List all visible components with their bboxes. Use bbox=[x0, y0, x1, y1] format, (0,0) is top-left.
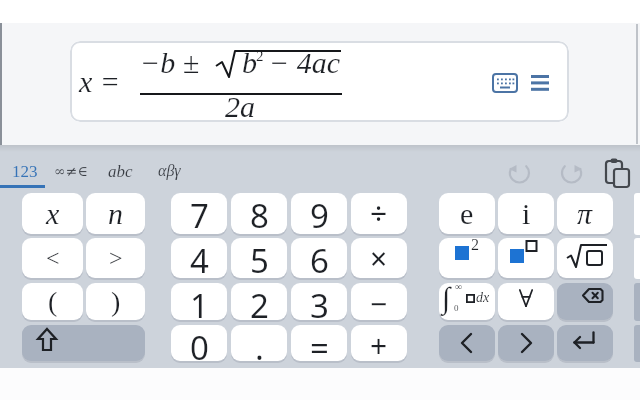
button[interactable]: 3 bbox=[291, 283, 347, 320]
staticText: < bbox=[46, 245, 60, 272]
staticText: 2 bbox=[256, 48, 264, 65]
staticText: 6 bbox=[310, 238, 329, 278]
staticText: −b ± bbox=[140, 46, 200, 79]
button[interactable]: ( bbox=[22, 283, 83, 320]
staticText: 1 bbox=[190, 283, 209, 320]
staticText: . bbox=[255, 325, 264, 361]
button[interactable]: 8 bbox=[231, 193, 287, 234]
staticText: × bbox=[370, 238, 388, 278]
button[interactable] bbox=[439, 325, 495, 361]
button[interactable]: 2 bbox=[231, 283, 287, 320]
button[interactable] bbox=[439, 238, 495, 278]
staticText: n bbox=[108, 197, 123, 230]
staticText: ∫ bbox=[442, 281, 451, 314]
button[interactable]: 7 bbox=[171, 193, 227, 234]
button[interactable]: . bbox=[231, 325, 287, 361]
button[interactable]: i bbox=[498, 193, 554, 234]
staticText: 0 bbox=[454, 303, 459, 313]
staticText: 2a bbox=[225, 90, 255, 123]
button[interactable]: ∞≠∈ bbox=[50, 159, 92, 183]
staticText: ) bbox=[111, 286, 121, 317]
button[interactable] bbox=[22, 325, 145, 361]
staticText: > bbox=[109, 245, 123, 272]
staticText: ∞ bbox=[455, 281, 463, 292]
staticText: 3 bbox=[310, 283, 329, 320]
staticText: x bbox=[46, 197, 60, 230]
button[interactable]: 123 bbox=[4, 159, 46, 183]
button[interactable] bbox=[498, 325, 554, 361]
button[interactable]: + bbox=[351, 325, 407, 361]
button[interactable] bbox=[531, 75, 549, 93]
staticText: b bbox=[242, 46, 257, 79]
button[interactable] bbox=[439, 283, 495, 320]
button[interactable]: x bbox=[22, 193, 83, 234]
staticText: 5 bbox=[250, 238, 269, 278]
staticText: 2 bbox=[471, 236, 479, 254]
staticText: i bbox=[522, 197, 531, 230]
staticText: 8 bbox=[250, 193, 269, 234]
button[interactable]: − bbox=[351, 283, 407, 320]
staticText: 123 bbox=[12, 162, 38, 181]
staticText: x = bbox=[79, 65, 121, 98]
button[interactable]: n bbox=[86, 193, 145, 234]
button[interactable] bbox=[498, 238, 554, 278]
button[interactable] bbox=[557, 325, 613, 361]
staticText: 9 bbox=[310, 193, 329, 234]
staticText: ÷ bbox=[370, 193, 388, 234]
button[interactable]: 1 bbox=[171, 283, 227, 320]
button[interactable]: × bbox=[351, 238, 407, 278]
staticText: 2 bbox=[250, 283, 269, 320]
button[interactable] bbox=[493, 72, 518, 95]
button[interactable]: 9 bbox=[291, 193, 347, 234]
staticText: ( bbox=[48, 286, 58, 317]
staticText: 0 bbox=[190, 325, 209, 361]
staticText: dx bbox=[476, 290, 490, 306]
button[interactable] bbox=[557, 238, 613, 278]
button[interactable]: ) bbox=[86, 283, 145, 320]
button[interactable]: 0 bbox=[171, 325, 227, 361]
button[interactable] bbox=[605, 158, 635, 189]
staticText: − bbox=[370, 283, 388, 320]
staticText: αβγ bbox=[158, 162, 181, 180]
staticText: − 4ac bbox=[269, 46, 341, 79]
button[interactable]: < bbox=[22, 238, 83, 278]
staticText: ∞≠∈ bbox=[54, 163, 88, 179]
button[interactable] bbox=[498, 283, 554, 320]
button[interactable]: > bbox=[86, 238, 145, 278]
staticText: π bbox=[577, 197, 593, 230]
staticText: 4 bbox=[190, 238, 209, 278]
button[interactable]: αβγ bbox=[148, 159, 190, 183]
button[interactable]: 5 bbox=[231, 238, 287, 278]
button[interactable]: e bbox=[439, 193, 495, 234]
staticText: + bbox=[370, 325, 388, 361]
button[interactable]: = bbox=[291, 325, 347, 361]
button[interactable] bbox=[559, 160, 584, 185]
staticText: = bbox=[310, 325, 329, 361]
staticText: abc bbox=[108, 162, 133, 181]
button[interactable]: π bbox=[557, 193, 613, 234]
button[interactable]: 4 bbox=[171, 238, 227, 278]
button[interactable]: 6 bbox=[291, 238, 347, 278]
staticText: 7 bbox=[190, 193, 209, 234]
staticText: e bbox=[460, 197, 474, 230]
button[interactable]: abc bbox=[101, 159, 139, 183]
button[interactable]: ÷ bbox=[351, 193, 407, 234]
button[interactable] bbox=[70, 41, 569, 122]
button[interactable] bbox=[507, 160, 532, 185]
button[interactable] bbox=[557, 283, 613, 320]
